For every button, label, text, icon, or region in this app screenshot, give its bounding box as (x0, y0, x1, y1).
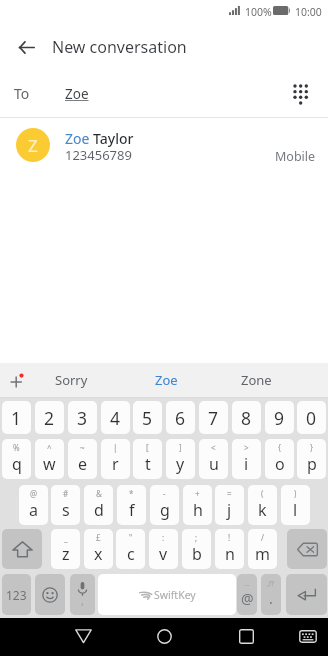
button[interactable]: : (149, 529, 178, 569)
button[interactable]: Hide keyboard (291, 619, 325, 653)
button[interactable]: ! (215, 529, 244, 569)
button[interactable]: Period (261, 574, 281, 615)
button[interactable]: 2 (35, 401, 64, 434)
button[interactable]: 1 (2, 401, 31, 434)
button[interactable]: Enter (286, 574, 327, 615)
button[interactable]: £ (84, 529, 113, 569)
staticText: SwiftKey (154, 588, 196, 602)
button[interactable]: # (51, 485, 80, 525)
button[interactable]: = (215, 485, 244, 525)
staticText: Sorry (55, 371, 88, 389)
button[interactable]: Voice input (70, 574, 95, 615)
staticText: u (209, 453, 219, 475)
button[interactable]: } (297, 439, 326, 479)
staticText: q (12, 453, 22, 475)
button[interactable]: - (150, 485, 179, 525)
staticText: Zone (241, 371, 272, 389)
button[interactable]: At sign (237, 574, 257, 615)
staticText: 10:00 (295, 5, 322, 19)
staticText: > (244, 442, 249, 453)
staticText: b (192, 543, 202, 565)
staticText: ; (195, 532, 198, 543)
button[interactable]: 4 (101, 401, 130, 434)
staticText: ) (294, 488, 297, 499)
staticText: 9 (274, 406, 285, 430)
staticText: 2 (44, 406, 55, 430)
staticText: # (63, 488, 69, 499)
staticText: @ (30, 488, 38, 499)
button[interactable]: ( (248, 485, 277, 525)
button[interactable]: Zone (220, 363, 292, 397)
button[interactable]: { (265, 439, 294, 479)
staticText: , (81, 593, 84, 608)
button[interactable]: [ (133, 439, 162, 479)
button[interactable]: Shift (2, 529, 42, 569)
staticText: ... (244, 579, 250, 589)
button[interactable]: Zoe (65, 79, 89, 109)
staticText: m (255, 543, 270, 565)
staticText: | (113, 442, 118, 453)
button[interactable]: 3 (68, 401, 97, 434)
button[interactable]: Sorry (33, 363, 109, 397)
button[interactable]: ^ (35, 439, 64, 479)
button[interactable]: Dialpad (284, 76, 320, 112)
button[interactable]: > (232, 439, 261, 479)
button[interactable]: Home (147, 619, 181, 653)
button[interactable]: Back (66, 619, 100, 653)
button[interactable]: Backspace (287, 529, 327, 569)
button[interactable]: " (116, 529, 145, 569)
staticText: Mobile (275, 148, 316, 165)
staticText: ( (261, 488, 264, 499)
staticText: ] (179, 442, 182, 453)
staticText: @ (241, 589, 254, 608)
staticText: d (94, 499, 104, 521)
button[interactable]: 8 (232, 401, 261, 434)
staticText: New conversation (52, 36, 187, 58)
staticText: [ (146, 442, 149, 453)
staticText: < (211, 442, 216, 453)
button[interactable]: Zoe (136, 363, 196, 397)
button[interactable]: Recents (229, 619, 263, 653)
button[interactable]: Z (0, 118, 328, 176)
staticText: = (227, 488, 232, 499)
staticText: 100% (245, 5, 272, 19)
staticText: To (14, 84, 30, 103)
button[interactable]: / (248, 529, 277, 569)
staticText: t (145, 453, 151, 475)
button[interactable]: 6 (166, 401, 195, 434)
button[interactable]: Number keyboard (2, 574, 31, 615)
button[interactable]: * (117, 485, 146, 525)
staticText: Zoe (65, 85, 89, 103)
staticText: g (160, 499, 170, 521)
button[interactable]: _ (51, 529, 80, 569)
button[interactable]: Space (98, 574, 236, 615)
button[interactable]: 5 (133, 401, 162, 434)
staticText: * (129, 488, 134, 499)
staticText: ,!? (267, 578, 275, 588)
button[interactable]: Add sticker (2, 366, 31, 395)
button[interactable]: ) (281, 485, 310, 525)
button[interactable]: Emoji (35, 574, 65, 615)
button[interactable]: 9 (265, 401, 294, 434)
button[interactable]: % (2, 439, 31, 479)
button[interactable]: 0 (297, 401, 326, 434)
button[interactable]: ] (166, 439, 195, 479)
staticText: _ (64, 532, 68, 543)
staticText: 4 (110, 406, 121, 430)
button[interactable]: < (199, 439, 228, 479)
button[interactable]: + (183, 485, 212, 525)
staticText: Zoe (155, 371, 178, 389)
staticText: v (159, 543, 168, 565)
button[interactable]: & (84, 485, 113, 525)
button[interactable]: @ (19, 485, 48, 525)
staticText: k (258, 499, 267, 521)
staticText: : (162, 532, 165, 543)
staticText: % (13, 442, 20, 453)
button[interactable]: Back (8, 29, 44, 65)
button[interactable]: 7 (199, 401, 228, 434)
button[interactable]: ; (182, 529, 211, 569)
button[interactable]: ~ (68, 439, 97, 479)
button[interactable]: | (101, 439, 130, 479)
staticText: { (278, 442, 282, 453)
staticText: j (227, 499, 232, 521)
